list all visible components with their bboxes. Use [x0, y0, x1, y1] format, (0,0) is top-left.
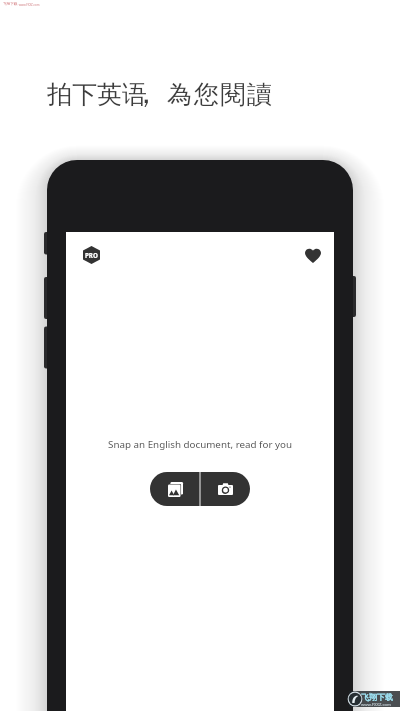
- staticText: Snap an English document, read for you: [0, 438, 400, 451]
- staticText: www.FXXZ.com: [361, 702, 391, 708]
- button[interactable]: Take photo with camera: [200, 472, 250, 506]
- staticText: 為您閱讀: [167, 79, 274, 110]
- button[interactable]: Pick image from gallery: [150, 472, 200, 506]
- staticText: 飞翔下载: [3, 2, 18, 7]
- staticText: 拍下英语: [47, 79, 147, 110]
- staticText: 飞翔下载: [361, 692, 393, 702]
- button[interactable]: Pro version: [83, 246, 100, 264]
- staticText: PRO: [85, 251, 98, 259]
- staticText: ，: [131, 74, 161, 112]
- staticText: www.FXXZ.com: [18, 3, 40, 7]
- button[interactable]: Favorites: [305, 248, 321, 263]
